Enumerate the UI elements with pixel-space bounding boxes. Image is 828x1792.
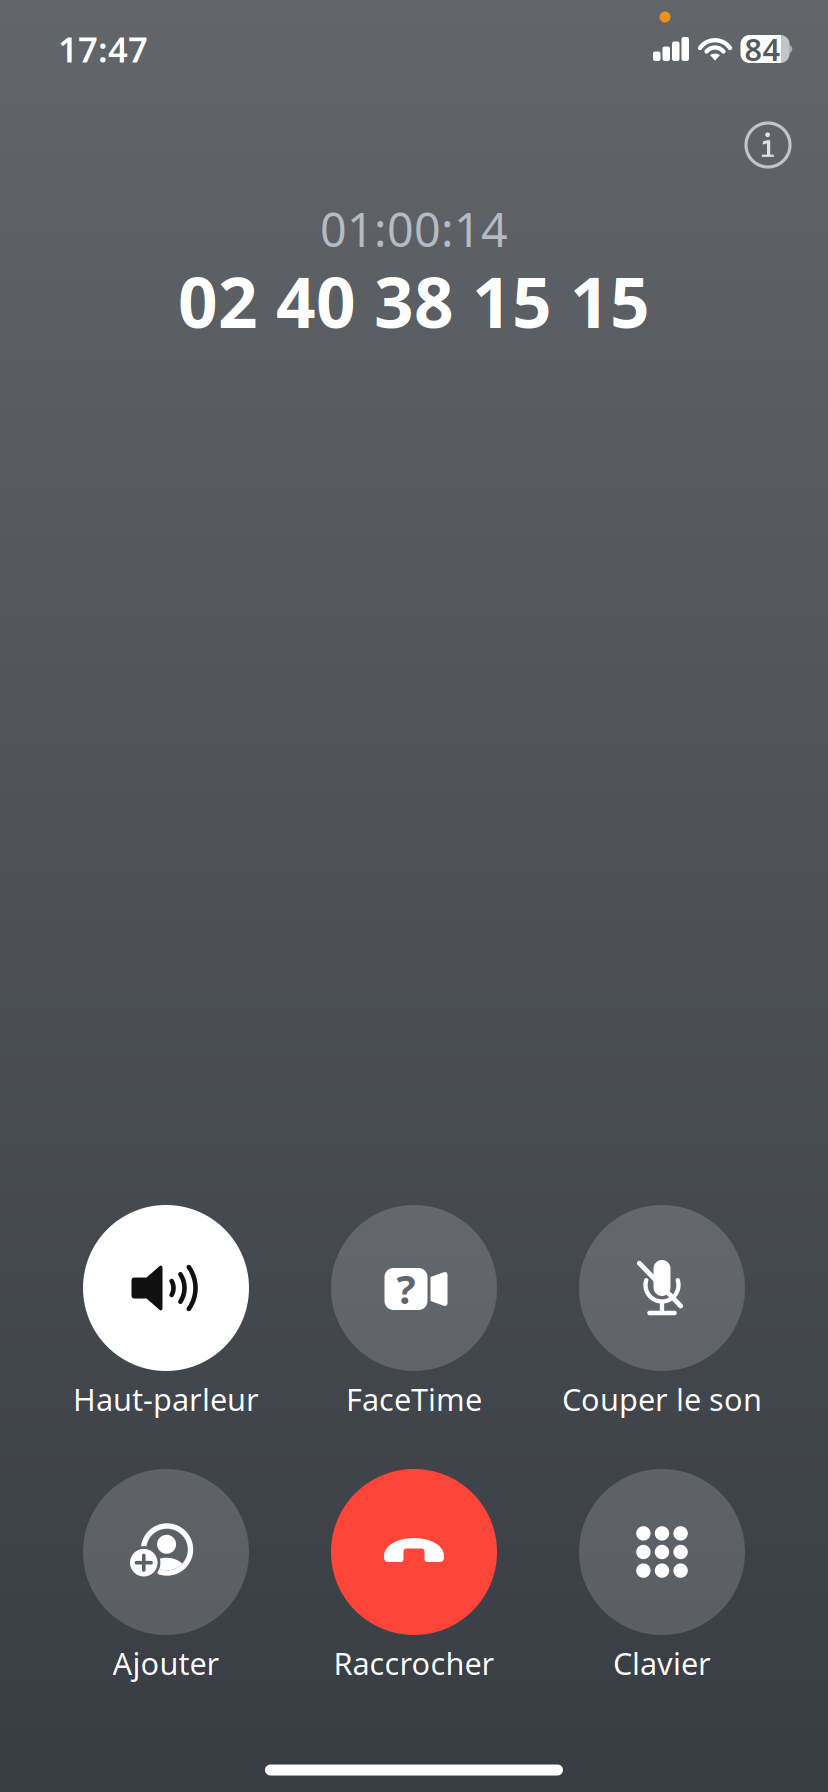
button[interactable]: ? — [290, 1204, 538, 1420]
button[interactable]: Couper le son — [538, 1204, 786, 1420]
button[interactable]: Ajouter — [42, 1468, 290, 1684]
button[interactable]: Clavier — [538, 1468, 786, 1684]
button[interactable]: Call info — [728, 105, 808, 185]
staticText: Couper le son — [562, 1379, 762, 1419]
staticText: 17:47 — [58, 26, 148, 72]
button[interactable]: Raccrocher — [290, 1468, 538, 1684]
staticText: 84 — [744, 29, 780, 69]
staticText: ? — [396, 1262, 415, 1315]
staticText: Haut-parleur — [73, 1379, 259, 1419]
staticText: Clavier — [613, 1643, 711, 1683]
staticText: 01:00:14 — [320, 198, 508, 260]
staticText: FaceTime — [346, 1379, 482, 1419]
staticText: Raccrocher — [333, 1643, 494, 1683]
button[interactable]: Haut-parleur — [42, 1204, 290, 1420]
staticText: Ajouter — [112, 1643, 219, 1683]
staticText: 02 40 38 15 15 — [178, 255, 650, 347]
